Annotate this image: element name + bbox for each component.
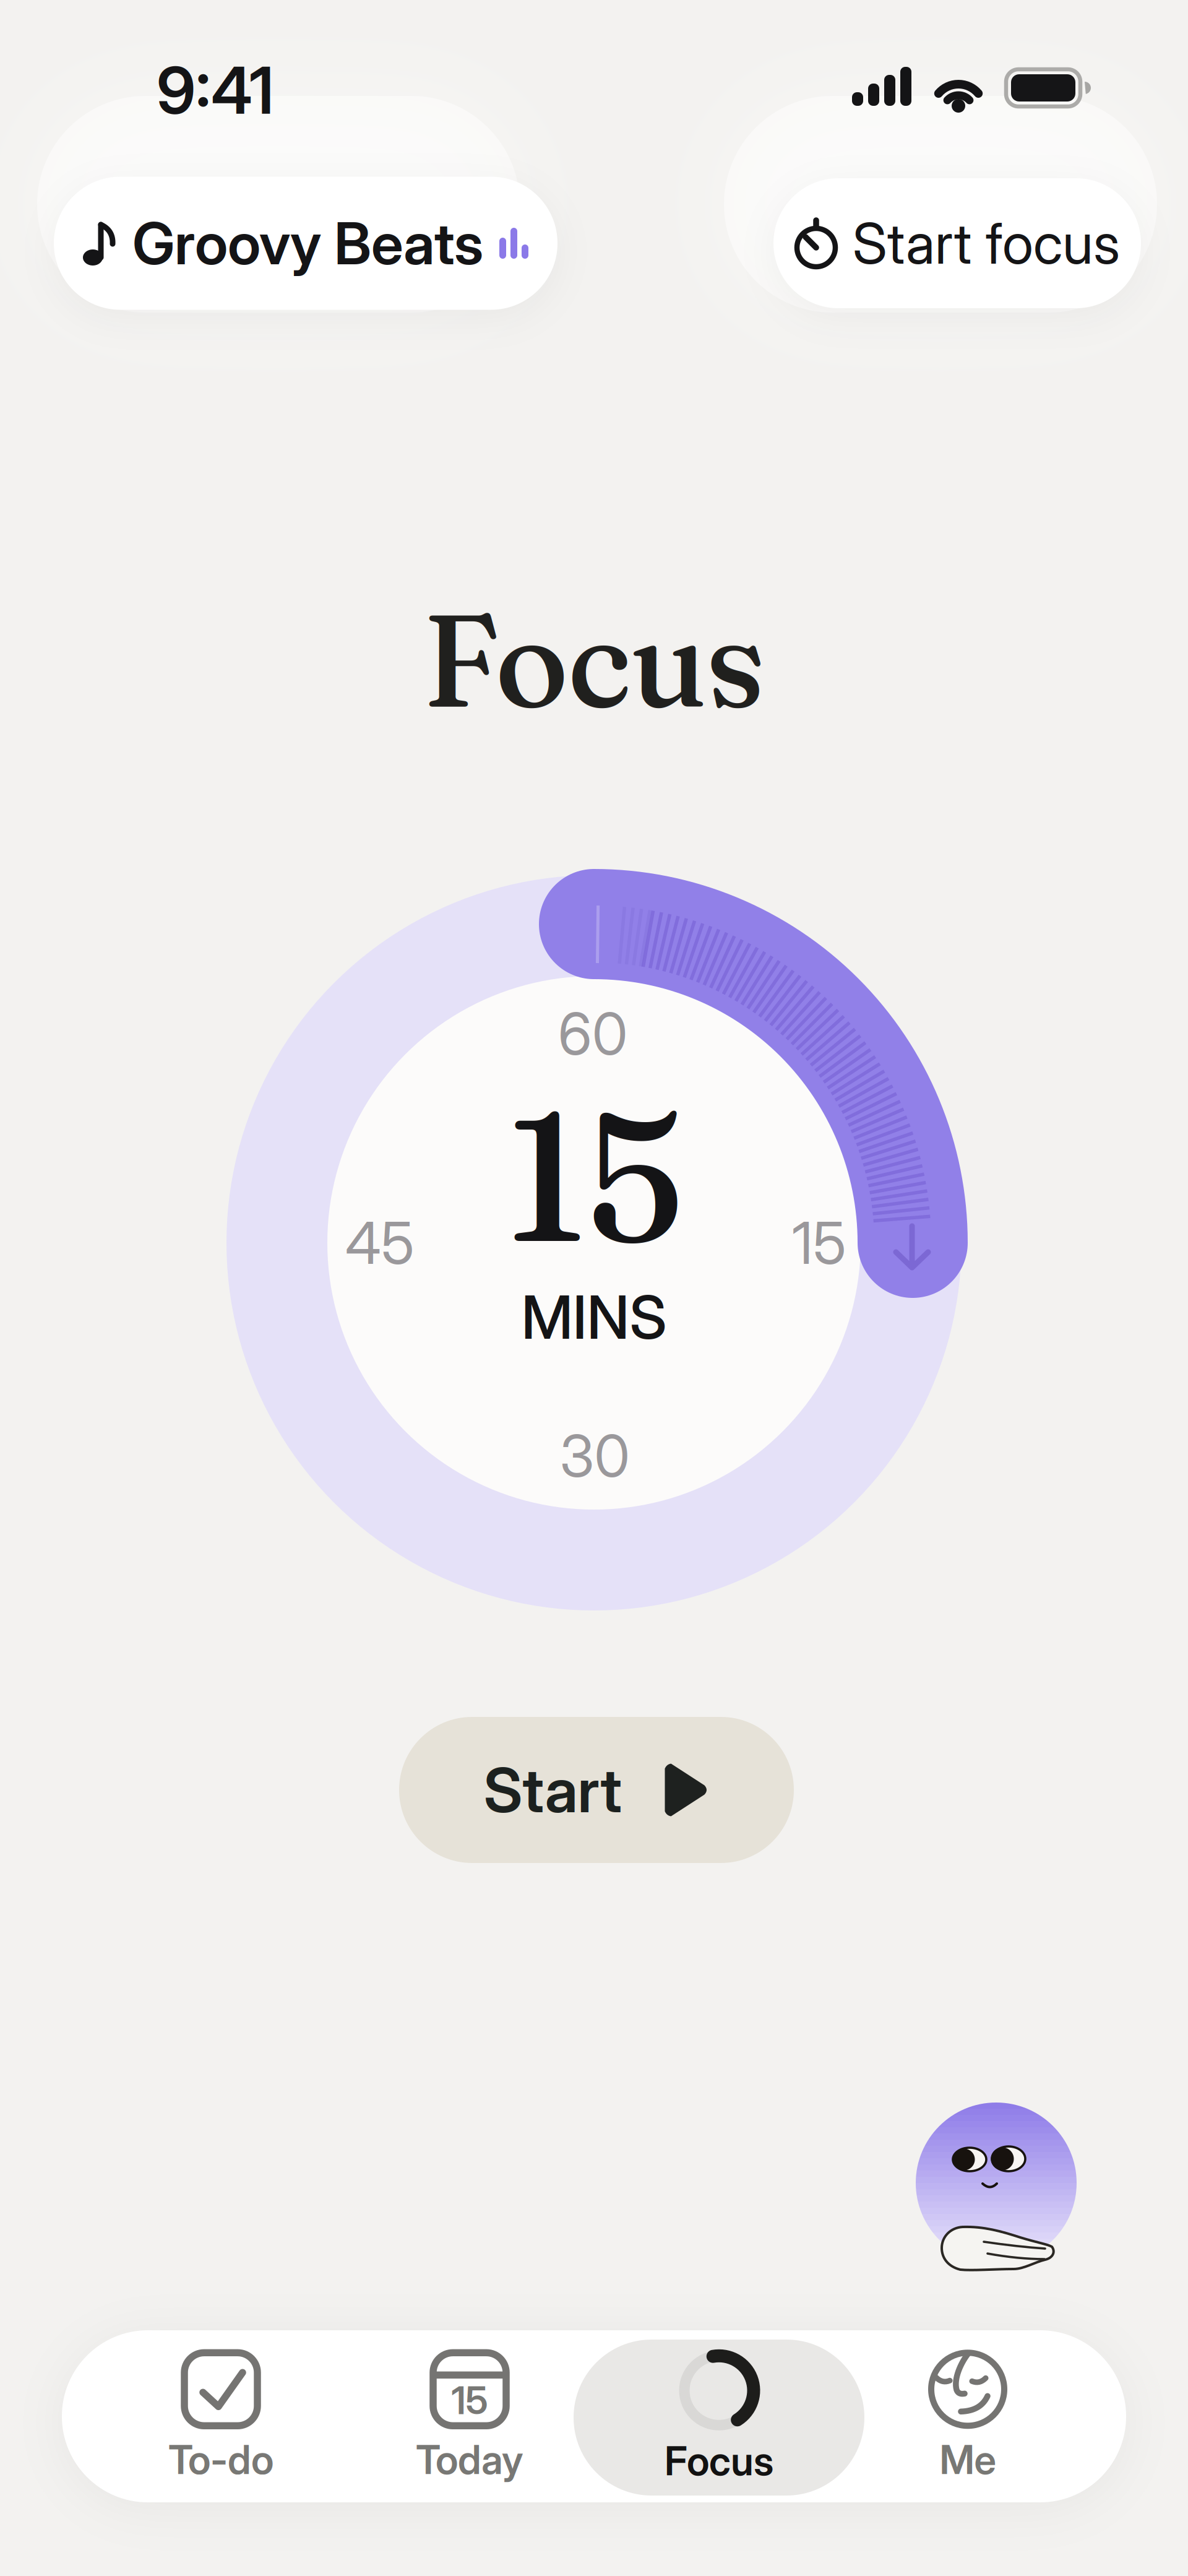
button[interactable]: Me: [866, 2339, 1070, 2494]
button[interactable]: Start focus: [773, 178, 1141, 308]
staticText: Groovy Beats: [132, 208, 483, 278]
staticText: Me: [940, 2436, 996, 2484]
staticText: 15: [451, 2377, 488, 2423]
staticText: MINS: [521, 1281, 667, 1353]
staticText: 45: [345, 1208, 415, 1278]
button[interactable]: Start: [399, 1717, 794, 1863]
staticText: Start: [484, 1753, 622, 1827]
staticText: Focus: [665, 2437, 773, 2485]
button[interactable]: 15: [368, 2339, 572, 2494]
staticText: To-do: [168, 2436, 273, 2484]
staticText: Start focus: [853, 209, 1120, 277]
button[interactable]: Groovy Beats: [54, 177, 557, 310]
staticText: 9:41: [157, 51, 274, 129]
staticText: 15: [508, 1065, 684, 1287]
staticText: 30: [560, 1421, 630, 1491]
staticText: 60: [558, 999, 627, 1069]
staticText: Today: [416, 2436, 523, 2484]
staticText: 15: [792, 1208, 846, 1278]
staticText: Focus: [423, 579, 765, 740]
button[interactable]: Focus: [574, 2340, 864, 2496]
button[interactable]: To-do: [119, 2339, 323, 2494]
